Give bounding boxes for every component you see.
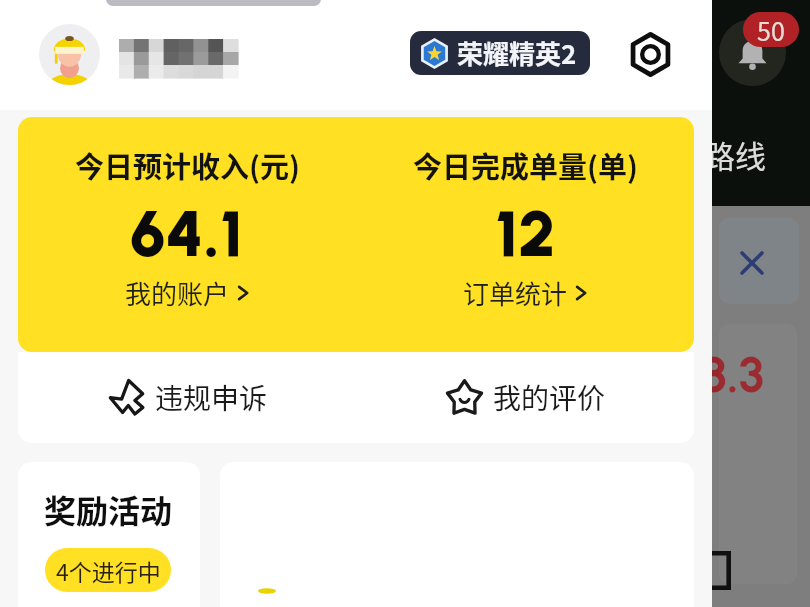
staticText: 违规申诉 [155, 377, 268, 418]
button[interactable]: Profile avatar [39, 24, 100, 85]
button[interactable]: Settings [622, 26, 678, 82]
button[interactable]: 荣耀精英2 [410, 31, 590, 75]
other: User name [119, 39, 238, 78]
staticText: 奖励活动 [44, 486, 173, 532]
button[interactable]: 今日完成单量(单) [356, 117, 694, 352]
button[interactable]: 违规申诉 [18, 352, 356, 443]
staticText: 路线 [704, 132, 766, 177]
staticText: 64.1 [130, 195, 244, 272]
staticText: 50 [757, 12, 785, 47]
staticText: 今日预计收入(元) [75, 144, 300, 186]
staticText: 我的评价 [493, 377, 606, 418]
staticText: 荣耀精英2 [457, 34, 577, 72]
button[interactable]: 奖励活动 [18, 462, 200, 607]
staticText: 订单统计 [463, 274, 568, 312]
staticText: 我的账户 [125, 274, 230, 312]
button[interactable]: 今日预计收入(元) [18, 117, 356, 352]
button[interactable] [220, 462, 694, 607]
staticText: 今日完成单量(单) [413, 144, 638, 186]
staticText: 12 [495, 195, 556, 272]
staticText: 4个进行中 [56, 554, 161, 587]
staticText: 8.3 [700, 344, 765, 404]
button[interactable]: 我的评价 [356, 352, 694, 443]
